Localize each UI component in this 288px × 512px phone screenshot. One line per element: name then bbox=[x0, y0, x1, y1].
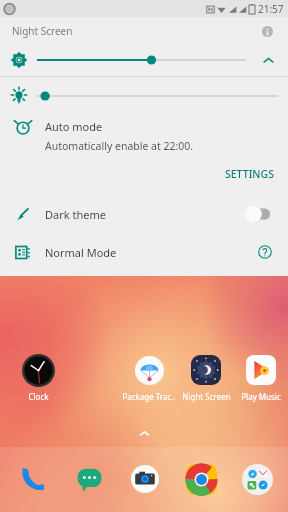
button[interactable]: Chrome bbox=[173, 456, 229, 502]
staticText: Play Music bbox=[241, 391, 281, 402]
button[interactable]: Open app drawer bbox=[134, 423, 154, 443]
staticText: Night Screen bbox=[182, 391, 231, 402]
button[interactable]: Dark theme bbox=[15, 198, 275, 230]
button[interactable]: Camera bbox=[117, 456, 173, 502]
button[interactable]: Messages bbox=[60, 456, 117, 502]
button[interactable]: Collapse bbox=[10, 44, 280, 76]
button[interactable]: SETTINGS bbox=[211, 163, 288, 185]
button[interactable]: Apps folder bbox=[229, 456, 285, 502]
button[interactable]: Play Music bbox=[234, 353, 288, 402]
button[interactable]: Help bbox=[255, 242, 275, 262]
button[interactable] bbox=[10, 77, 278, 115]
staticText: Clock bbox=[28, 391, 49, 402]
staticText: 21:57 bbox=[258, 2, 284, 16]
staticText: Dark theme bbox=[45, 207, 106, 222]
button[interactable]: App info bbox=[258, 22, 276, 40]
staticText: SETTINGS bbox=[225, 167, 274, 181]
button[interactable]: Phone bbox=[3, 456, 60, 502]
button[interactable]: Collapse bbox=[256, 48, 280, 72]
staticText: Package Trac.. bbox=[122, 391, 176, 402]
staticText: Auto mode bbox=[45, 119, 103, 134]
button[interactable]: Dark theme toggle bbox=[245, 204, 275, 224]
staticText: Night Screen bbox=[12, 24, 73, 38]
staticText: Automatically enable at 22:00. bbox=[45, 139, 194, 153]
button[interactable]: Clock bbox=[0, 353, 76, 402]
button[interactable]: Auto mode bbox=[15, 119, 276, 153]
button[interactable]: Night Screen bbox=[178, 353, 234, 402]
staticText: Normal Mode bbox=[45, 245, 117, 260]
button[interactable]: Package Trac.. bbox=[120, 353, 178, 402]
button[interactable]: Normal Mode bbox=[15, 237, 275, 267]
